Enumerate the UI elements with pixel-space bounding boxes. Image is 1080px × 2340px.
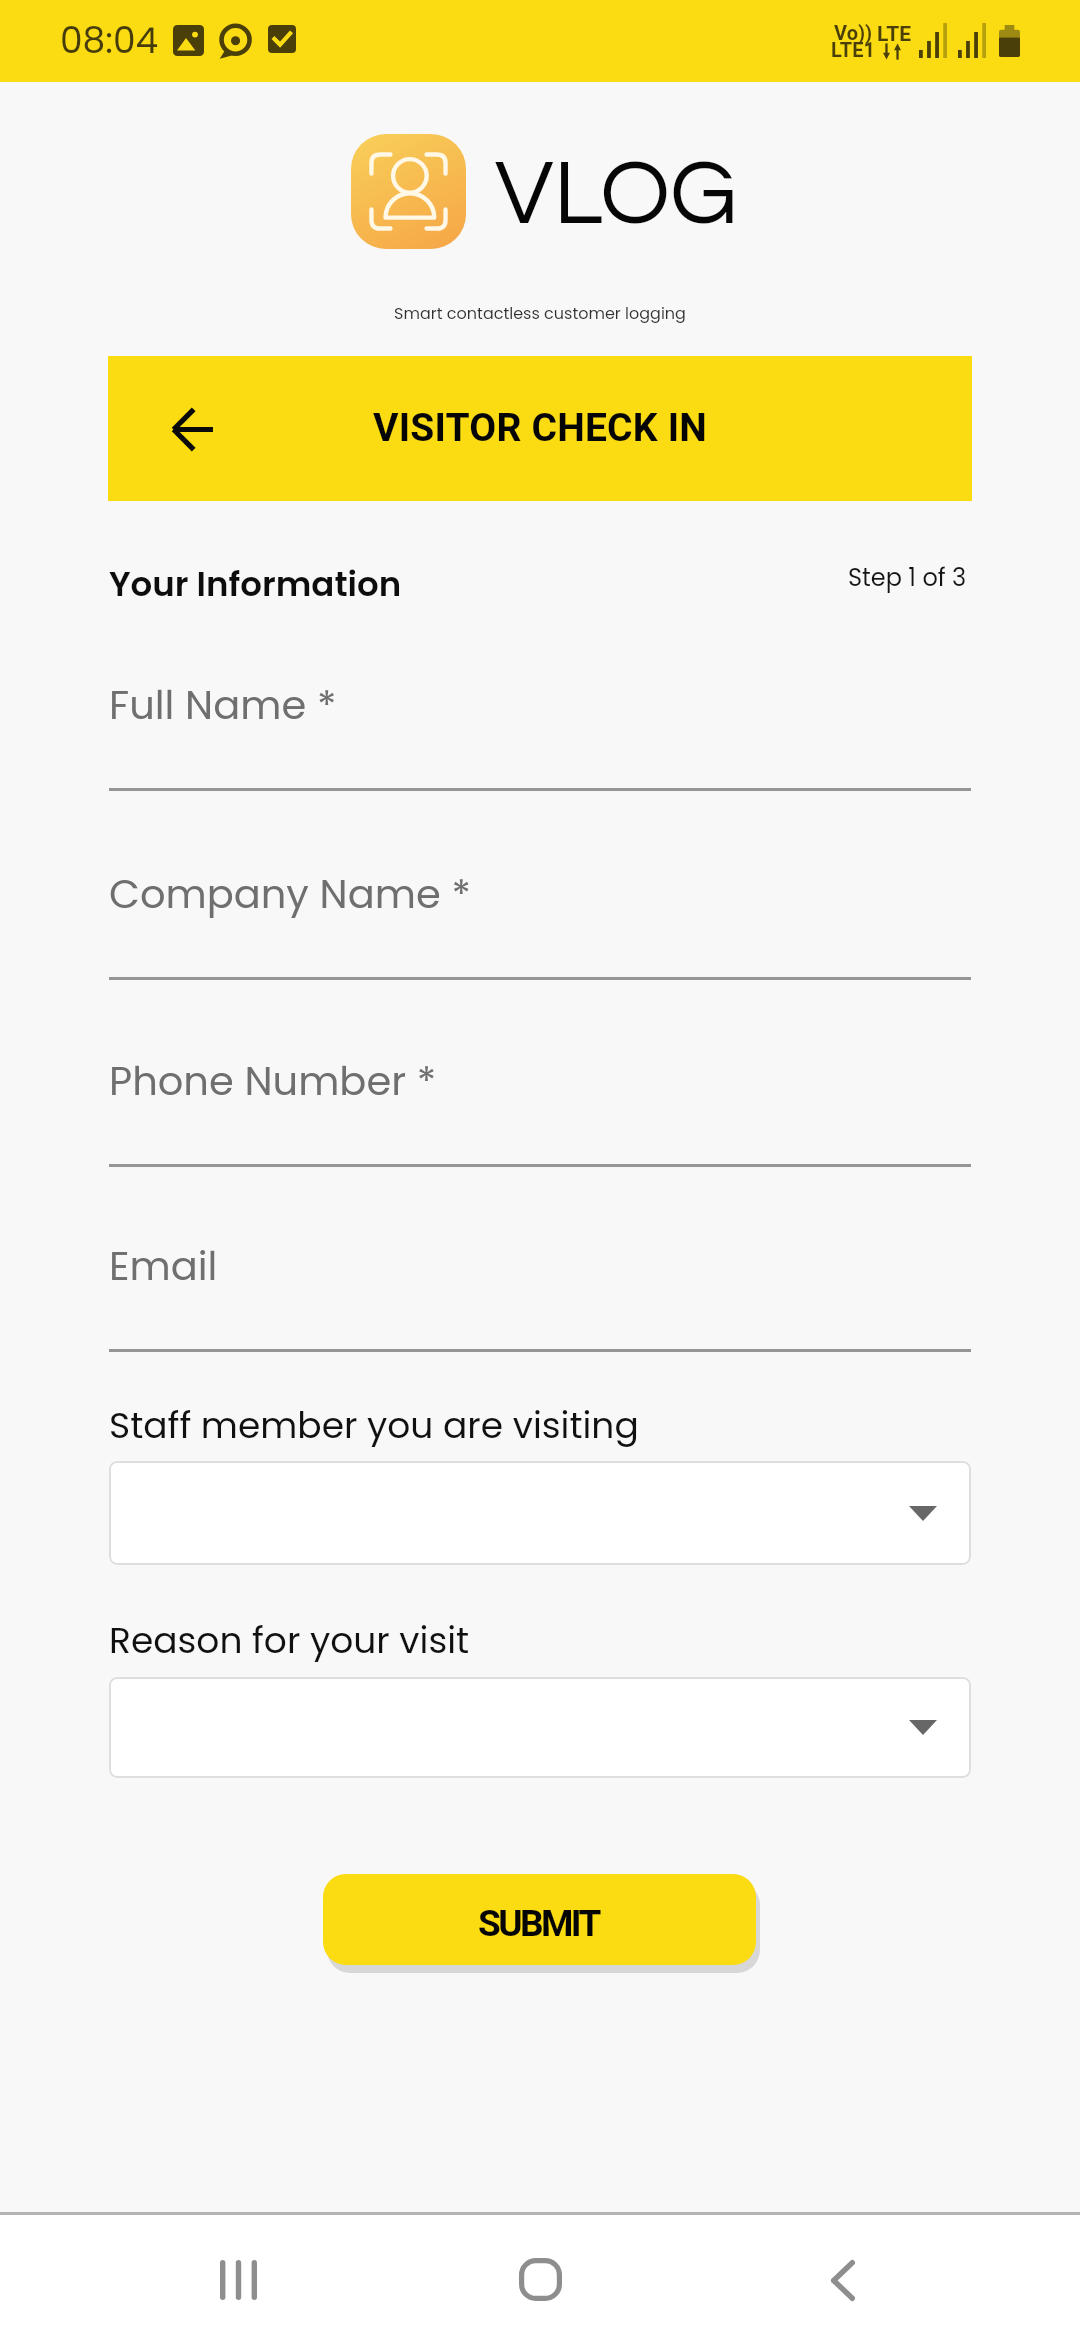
button[interactable]: Home — [480, 2215, 600, 2340]
staticText: Step 1 of 3 — [848, 561, 967, 595]
staticText: Full Name * — [109, 677, 337, 733]
button[interactable]: Company Name * — [109, 847, 971, 953]
button[interactable]: Back — [108, 356, 972, 501]
button[interactable]: Phone Number * — [109, 1034, 971, 1140]
button[interactable]: Email — [109, 1219, 971, 1325]
staticText: Your Information — [109, 560, 402, 608]
staticText: Staff member you are visiting — [109, 1400, 639, 1450]
button[interactable]: Back — [154, 391, 230, 467]
staticText: Reason for your visit — [109, 1615, 470, 1665]
staticText: VISITOR CHECK IN — [373, 405, 708, 451]
staticText: Company Name * — [109, 866, 471, 922]
staticText: SUBMIT — [478, 1902, 599, 1945]
staticText: Smart contactless customer logging — [0, 302, 1080, 324]
staticText: VLOG — [495, 147, 738, 243]
button[interactable]: Recent apps — [178, 2215, 298, 2340]
staticText: Vo)) — [834, 21, 873, 44]
staticText: 08:04 — [60, 15, 159, 65]
button[interactable]: SUBMIT — [323, 1874, 756, 1965]
button[interactable]: Back — [783, 2215, 903, 2340]
button[interactable]: Staff member you are visiting — [109, 1461, 971, 1565]
button[interactable]: Full Name * — [109, 658, 971, 764]
button[interactable]: Reason for your visit — [109, 1677, 971, 1778]
staticText: Phone Number * — [109, 1053, 437, 1109]
staticText: LTE1 — [831, 38, 875, 61]
staticText: Email — [109, 1238, 218, 1294]
staticText: LTE — [877, 22, 912, 47]
